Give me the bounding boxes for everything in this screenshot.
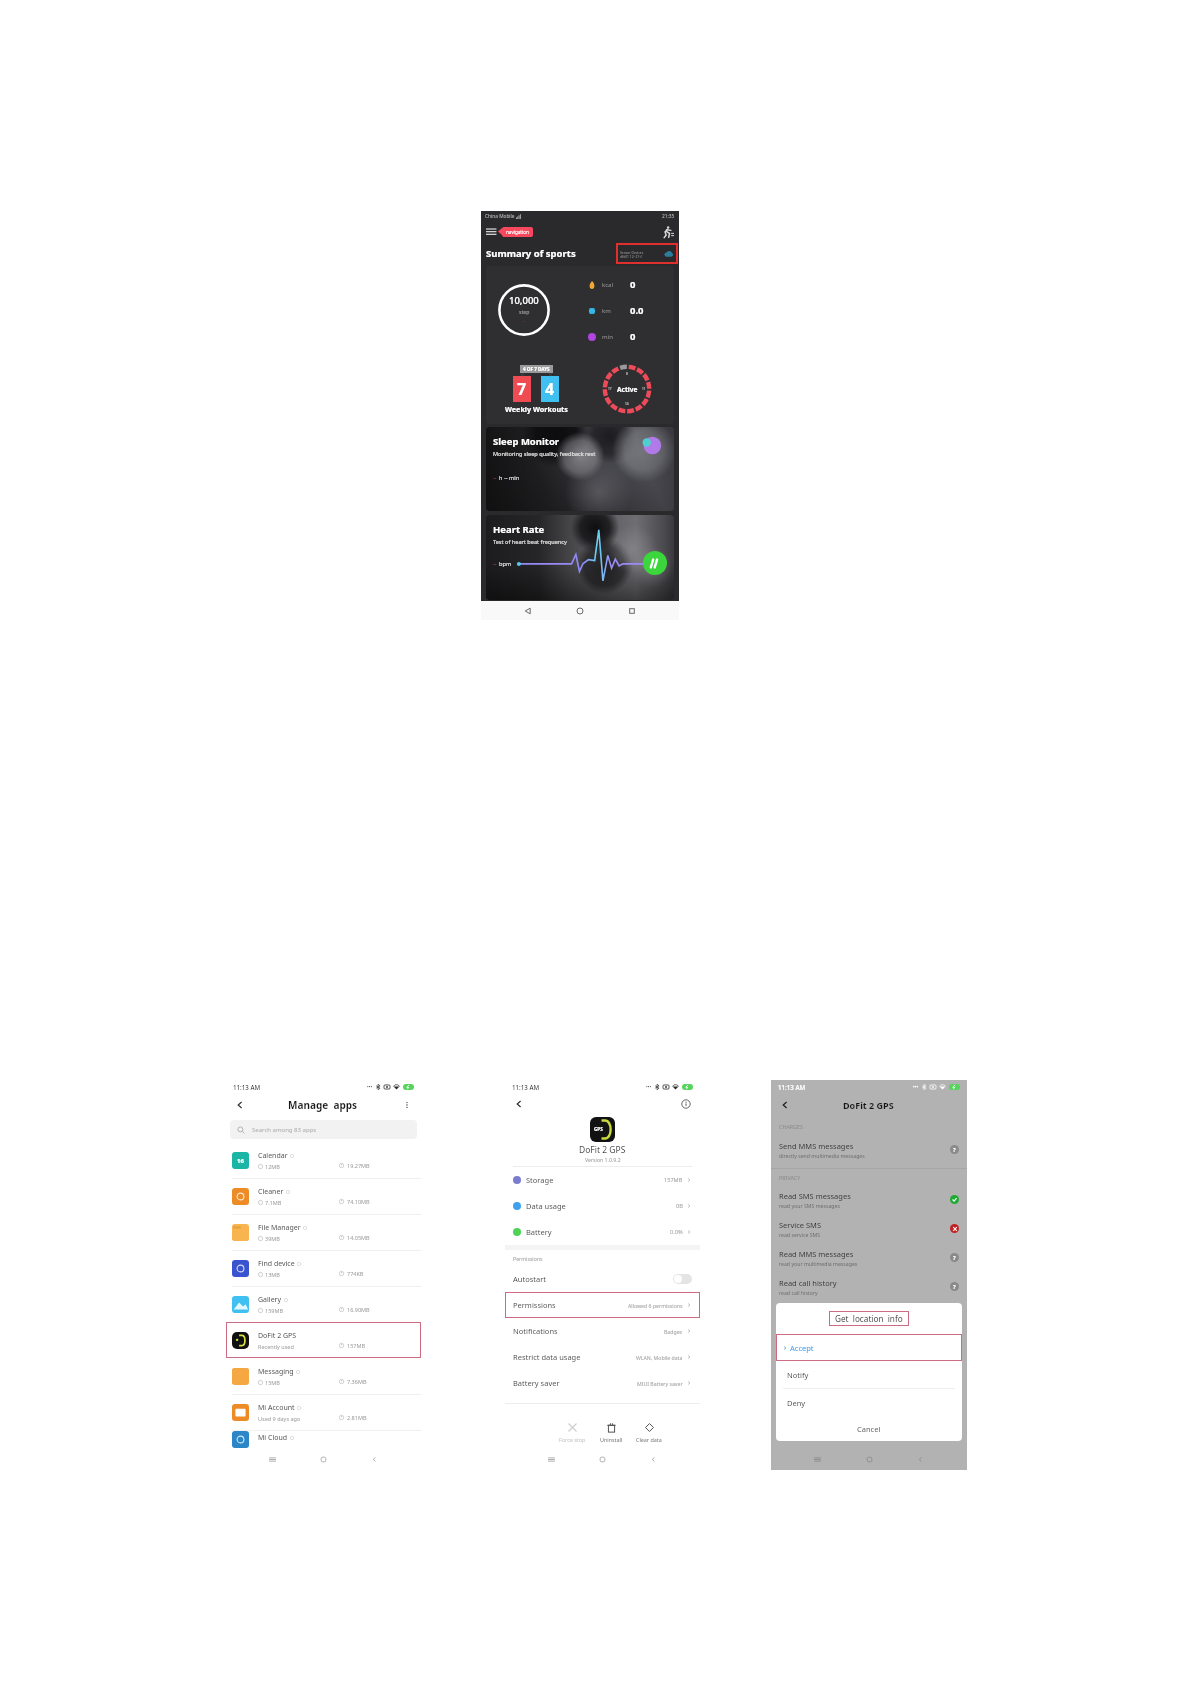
button[interactable]: Clear data	[630, 1420, 668, 1445]
button[interactable]: Read MMS messages	[779, 1243, 959, 1272]
button[interactable]: Search among 83 apps	[230, 1120, 417, 1139]
button[interactable]: Back	[370, 1455, 379, 1464]
button[interactable]: Recents	[813, 1455, 822, 1464]
button[interactable]: Back	[916, 1455, 925, 1464]
staticText: 157MB	[664, 1176, 683, 1184]
staticText: CHARGES	[779, 1123, 804, 1130]
button[interactable]: Permissions	[505, 1292, 700, 1318]
staticText: read your multimedia messages	[779, 1260, 858, 1267]
staticText: 13MB	[265, 1271, 280, 1278]
staticText: directly send multimedia messages	[779, 1152, 865, 1159]
button[interactable]: Cancel	[776, 1416, 962, 1441]
button[interactable]: 16	[226, 1142, 421, 1178]
button[interactable]: More options	[402, 1100, 412, 1110]
staticText: --	[493, 560, 497, 568]
button[interactable]: Read SMS messages	[779, 1185, 959, 1214]
staticText: 4	[545, 378, 555, 400]
button[interactable]: Uninstall	[594, 1420, 629, 1445]
button[interactable]: Battery	[513, 1219, 692, 1245]
button[interactable]: Storage	[513, 1167, 692, 1193]
staticText: 16.90MB	[347, 1306, 370, 1313]
staticText: Read SMS messages	[779, 1191, 851, 1201]
staticText: 0.0	[630, 304, 644, 317]
staticText: 14.05MB	[347, 1234, 370, 1241]
button[interactable]: App details	[681, 1099, 691, 1109]
staticText: 11:13 AM	[233, 1083, 261, 1091]
staticText: Badges	[664, 1328, 683, 1335]
button[interactable]: Gallery	[226, 1286, 421, 1322]
staticText: 74.10MB	[347, 1198, 370, 1205]
staticText: Send MMS messages	[779, 1141, 854, 1151]
button[interactable]: Mi Account	[226, 1394, 421, 1430]
staticText: Restrict data usage	[513, 1352, 581, 1362]
staticText: 157MB	[347, 1342, 366, 1349]
staticText: Used 9 days ago	[258, 1415, 301, 1422]
staticText: --	[493, 474, 497, 482]
staticText: Recently used	[258, 1343, 294, 1350]
button[interactable]: Cleaner	[226, 1178, 421, 1214]
button[interactable]: Notifications	[513, 1318, 692, 1344]
button[interactable]: Autostart	[513, 1266, 692, 1292]
button[interactable]: Battery saver	[513, 1370, 692, 1396]
button[interactable]: Menu	[486, 226, 497, 237]
button[interactable]: Back	[514, 1099, 524, 1109]
staticText: Weekly Workouts	[505, 404, 568, 414]
button[interactable]: Back	[649, 1455, 658, 1464]
staticText: ?	[953, 1283, 956, 1290]
staticText: Active	[617, 385, 638, 394]
button[interactable]: Data usage	[513, 1193, 692, 1219]
button[interactable]: Accept	[776, 1334, 962, 1361]
staticText: Uninstall	[600, 1436, 623, 1443]
button[interactable]: Force stop	[553, 1420, 592, 1445]
staticText: 0	[630, 330, 636, 343]
button[interactable]: Measure heart rate	[643, 551, 667, 575]
button[interactable]: Recents	[627, 606, 637, 616]
button[interactable]: Messaging	[226, 1358, 421, 1394]
staticText: Summary of sports	[486, 247, 576, 260]
button[interactable]: Restrict data usage	[513, 1344, 692, 1370]
button[interactable]: Back	[235, 1100, 245, 1110]
staticText: h -- min	[499, 474, 520, 482]
staticText: Allowed 6 permissions	[628, 1302, 683, 1309]
staticText: read your SMS messages	[779, 1202, 840, 1209]
staticText: Gallery	[258, 1295, 282, 1305]
staticText: bpm	[499, 560, 512, 568]
staticText: 21:35	[662, 213, 675, 220]
button[interactable]: Heart Rate	[486, 515, 674, 600]
button[interactable]: Recents	[547, 1455, 556, 1464]
staticText: •••	[913, 1084, 919, 1090]
button[interactable]: Mi Cloud	[226, 1430, 421, 1448]
button[interactable]: Sensor Devices	[620, 243, 674, 264]
button[interactable]: Read call history	[779, 1272, 959, 1301]
staticText: PRIVACY	[779, 1174, 801, 1181]
staticText: 11	[642, 387, 646, 391]
button[interactable]: Deny	[776, 1389, 962, 1416]
staticText: Search among 83 apps	[252, 1126, 317, 1134]
staticText: ?	[953, 1146, 956, 1153]
button[interactable]: Home	[575, 606, 585, 616]
staticText: navigation	[506, 229, 529, 235]
staticText: 7.36MB	[347, 1378, 367, 1385]
staticText: Deny	[787, 1398, 806, 1408]
staticText: Manage apps	[288, 1098, 358, 1112]
button[interactable]: Send MMS messages	[779, 1135, 959, 1164]
staticText: Permissions	[513, 1300, 556, 1310]
button[interactable]: Service SMS	[779, 1214, 959, 1243]
other: Sport record	[660, 225, 674, 239]
button[interactable]: Sleep Monitor	[486, 427, 674, 511]
button[interactable]: Back	[523, 606, 533, 616]
staticText: 0	[630, 278, 636, 291]
button[interactable]: Home	[598, 1455, 607, 1464]
staticText: 2.81MB	[347, 1414, 367, 1421]
button[interactable]: File Manager	[226, 1214, 421, 1250]
staticText: Version 1.0.9.2	[585, 1156, 621, 1163]
button[interactable]: Find device	[226, 1250, 421, 1286]
staticText: 17	[608, 387, 612, 391]
staticText: Notify	[787, 1370, 809, 1380]
button[interactable]: Recents	[268, 1455, 277, 1464]
button[interactable]: Back	[780, 1100, 790, 1110]
button[interactable]: Notify	[776, 1361, 962, 1388]
button[interactable]: DoFit 2 GPS	[226, 1322, 421, 1358]
button[interactable]: Home	[865, 1455, 874, 1464]
button[interactable]: Home	[319, 1455, 328, 1464]
